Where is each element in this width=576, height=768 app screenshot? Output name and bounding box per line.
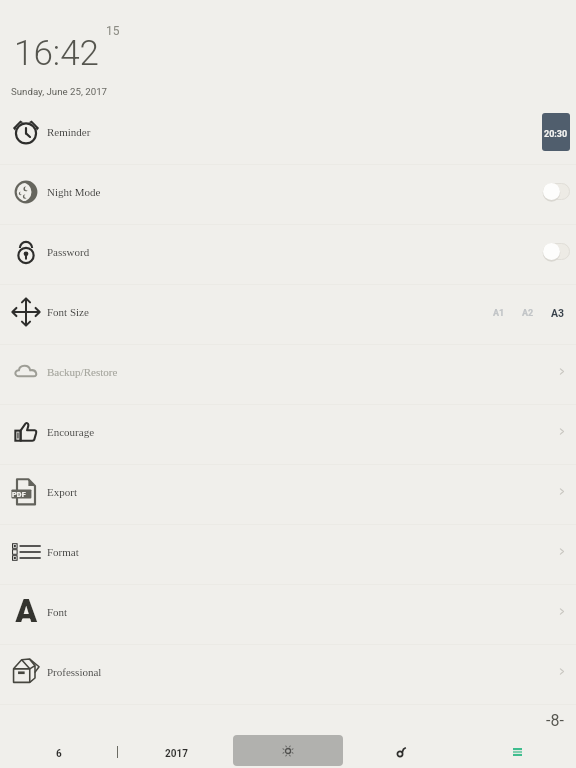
staticText: Encourage	[47, 426, 95, 438]
staticText: 15	[106, 24, 120, 38]
button[interactable]: Night Mode	[0, 165, 576, 224]
staticText: 20:30	[544, 129, 568, 140]
staticText: A2	[522, 308, 534, 319]
staticText: Night Mode	[47, 186, 101, 198]
staticText: 6	[56, 748, 62, 760]
button[interactable]: Brightness	[233, 735, 343, 766]
staticText: Backup/Restore	[47, 366, 118, 378]
button[interactable]: Font Size	[0, 285, 576, 344]
staticText: Font Size	[47, 306, 89, 318]
staticText: Password	[47, 246, 90, 258]
button[interactable]: PDF	[0, 465, 576, 524]
staticText: Sunday, June 25, 2017	[11, 86, 108, 97]
staticText: Professional	[47, 666, 102, 678]
staticText: Format	[47, 546, 79, 558]
button[interactable]: Music	[364, 737, 437, 767]
button[interactable]	[543, 243, 570, 260]
button[interactable]: Backup/Restore	[0, 345, 576, 404]
button[interactable]: Professional	[0, 645, 576, 704]
staticText: A1	[493, 308, 505, 319]
staticText: A3	[551, 307, 565, 319]
button[interactable]: 20:30	[542, 113, 570, 151]
button[interactable]: Reminder	[0, 105, 576, 164]
button[interactable]: Password	[0, 225, 576, 284]
staticText: PDF	[12, 490, 26, 498]
button[interactable]: A	[0, 585, 576, 644]
button[interactable]: 2017	[140, 739, 213, 768]
button[interactable]: 6	[22, 739, 95, 768]
button[interactable]	[543, 183, 570, 200]
staticText: Font	[47, 606, 68, 618]
button[interactable]: Format	[0, 525, 576, 584]
button[interactable]: Menu	[481, 737, 554, 767]
staticText: A	[15, 592, 38, 622]
staticText: -8-	[546, 711, 564, 730]
staticText: Reminder	[47, 126, 91, 138]
staticText: Export	[47, 486, 77, 498]
button[interactable]: Encourage	[0, 405, 576, 464]
staticText: 2017	[165, 748, 188, 760]
staticText: 16:42	[14, 33, 100, 74]
